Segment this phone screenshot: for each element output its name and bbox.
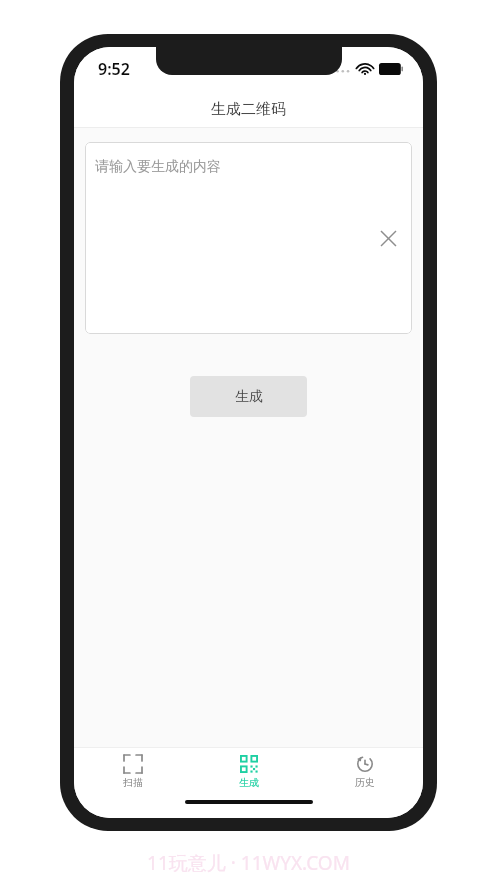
- button[interactable]: 请输入要生成的内容: [85, 142, 412, 334]
- button[interactable]: 扫描: [74, 751, 191, 793]
- staticText: 扫描: [123, 776, 143, 789]
- staticText: 生成: [235, 388, 263, 406]
- staticText: 生成二维码: [211, 100, 286, 119]
- staticText: 请输入要生成的内容: [95, 158, 221, 176]
- staticText: 历史: [355, 776, 375, 789]
- staticText: 生成: [239, 776, 259, 789]
- staticText: 9:52: [98, 58, 130, 80]
- button[interactable]: 历史: [307, 751, 423, 793]
- button[interactable]: 清空: [374, 224, 402, 252]
- button[interactable]: 生成: [190, 376, 307, 417]
- staticText: 11玩意儿 · 11WYX.COM: [0, 850, 497, 876]
- button[interactable]: 生成: [191, 751, 307, 793]
